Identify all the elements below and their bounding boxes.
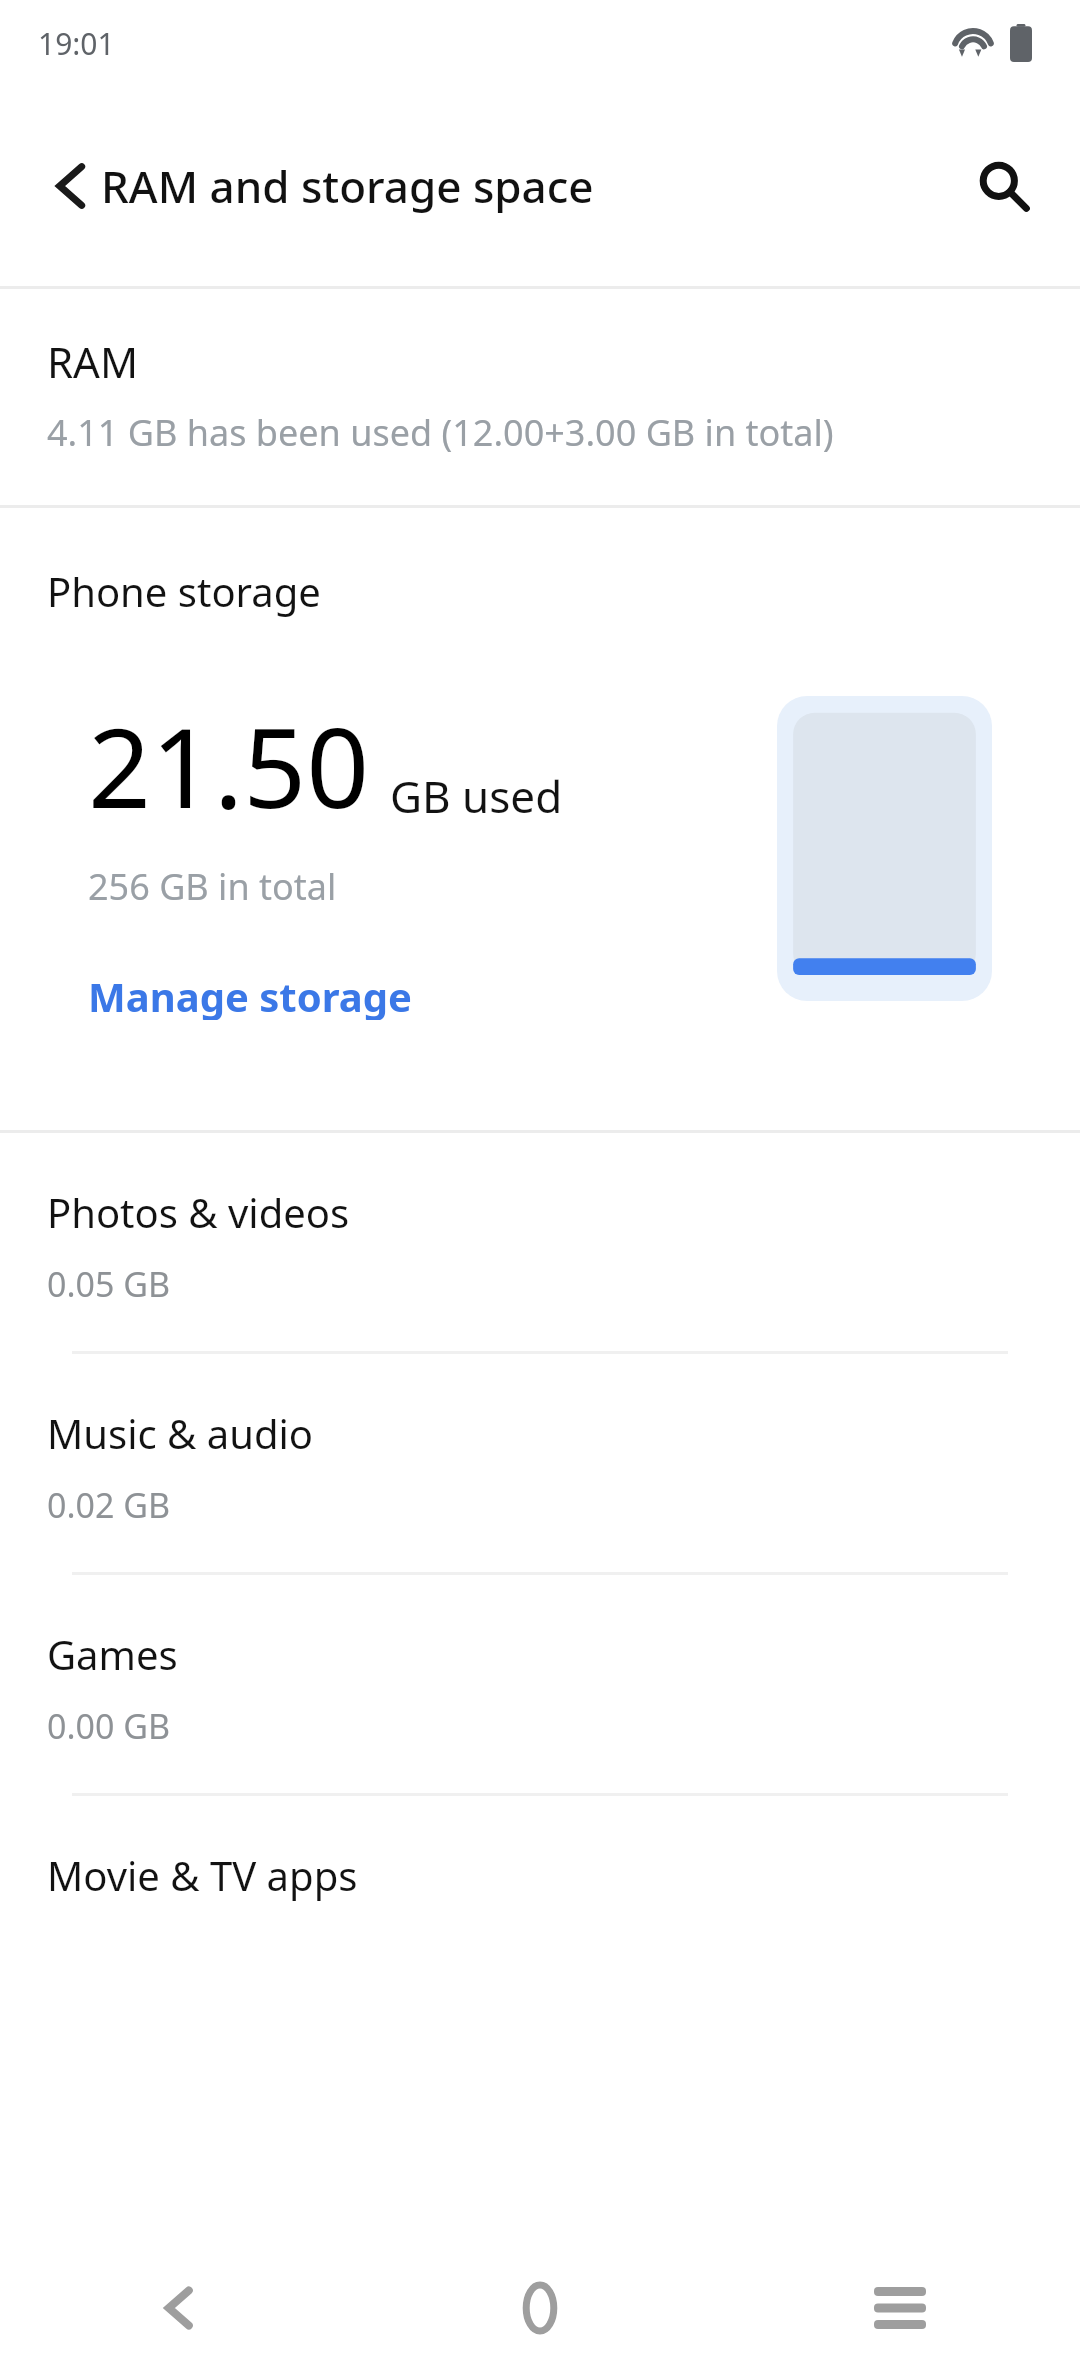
staticText: 256 GB in total bbox=[88, 862, 337, 911]
button[interactable]: Music & audio bbox=[0, 1354, 1080, 1572]
button[interactable]: Search bbox=[954, 136, 1054, 236]
staticText: Photos & videos bbox=[47, 1185, 350, 1239]
button[interactable]: Home bbox=[360, 2240, 720, 2376]
staticText: 0.00 GB bbox=[47, 1703, 171, 1749]
button[interactable]: Recent apps bbox=[720, 2240, 1080, 2376]
staticText: RAM bbox=[47, 333, 139, 390]
staticText: Manage storage bbox=[88, 969, 412, 1020]
staticText: Music & audio bbox=[47, 1406, 314, 1460]
staticText: 21.50 bbox=[88, 690, 370, 840]
staticText: 19:01 bbox=[38, 23, 115, 64]
button[interactable]: Back bbox=[0, 2240, 360, 2376]
staticText: 0.05 GB bbox=[47, 1261, 171, 1307]
button[interactable]: Photos & videos bbox=[0, 1133, 1080, 1351]
staticText: Games bbox=[47, 1627, 178, 1681]
staticText: 0.02 GB bbox=[47, 1482, 171, 1528]
button[interactable]: Manage storage bbox=[70, 959, 430, 1030]
staticText: 4.11 GB has been used (12.00+3.00 GB in … bbox=[47, 408, 834, 457]
button[interactable]: Movie & TV apps bbox=[0, 1796, 1080, 1902]
staticText: RAM and storage space bbox=[101, 156, 594, 216]
button[interactable]: RAM bbox=[0, 289, 1080, 505]
button[interactable]: Back bbox=[24, 138, 120, 234]
staticText: GB used bbox=[390, 766, 563, 826]
staticText: Phone storage bbox=[47, 564, 321, 618]
button[interactable]: Games bbox=[0, 1575, 1080, 1793]
staticText: Movie & TV apps bbox=[47, 1848, 358, 1902]
